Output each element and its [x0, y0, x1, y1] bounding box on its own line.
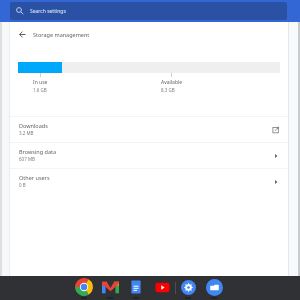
- staticText: 0 B: [19, 182, 26, 188]
- staticText: Storage management: [33, 31, 90, 38]
- staticText: 607 MB: [19, 156, 35, 162]
- staticText: Browsing data: [19, 148, 57, 155]
- button[interactable]: Gmail: [97, 276, 123, 300]
- button[interactable]: Chrome: [71, 276, 97, 300]
- other: Open Browsing data details: [271, 151, 281, 161]
- button[interactable]: Google Docs: [123, 276, 149, 300]
- button[interactable]: YouTube: [149, 276, 175, 300]
- staticText: Search settings: [30, 8, 66, 15]
- staticText: Available: [161, 79, 183, 86]
- other: Open Other users details: [271, 177, 281, 187]
- button[interactable]: Files: [201, 276, 227, 300]
- staticText: 1.6 GB: [33, 87, 47, 93]
- staticText: Other users: [19, 174, 50, 181]
- button[interactable]: Back: [14, 26, 31, 43]
- button[interactable]: Search: [10, 2, 287, 20]
- other: Open Downloads: [271, 125, 281, 135]
- button[interactable]: Browsing data: [10, 143, 288, 168]
- staticText: 3.2 MB: [19, 130, 34, 136]
- staticText: 8.3 GB: [161, 87, 175, 93]
- staticText: Downloads: [19, 122, 48, 129]
- button[interactable]: Settings: [175, 276, 201, 300]
- button[interactable]: Other users: [10, 169, 288, 194]
- other: Search: [16, 7, 24, 15]
- staticText: In use: [33, 79, 48, 86]
- button[interactable]: Downloads: [10, 117, 288, 142]
